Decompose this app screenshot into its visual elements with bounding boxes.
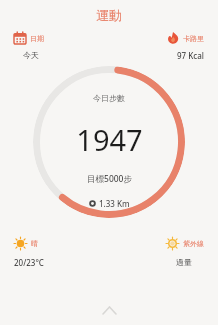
button[interactable]: 紫外線 [162,235,206,269]
staticText: 日期 [30,34,44,43]
button[interactable]: 晴 [12,235,46,270]
staticText: 97 Kcal [177,50,204,61]
staticText: 晴 [31,239,38,248]
staticText: 今日步數 [93,93,125,103]
staticText: 今天 [23,50,39,60]
staticText: 1947 [76,120,143,159]
button[interactable]: 卡路里 [165,30,206,63]
staticText: 紫外線 [183,239,204,248]
staticText: 目標5000步 [87,173,132,185]
staticText: 運動 [96,7,122,23]
staticText: 20/23°C [14,257,44,268]
button[interactable]: Expand [96,297,122,323]
staticText: 過量 [176,257,192,267]
button[interactable]: 今日步數 [33,66,185,218]
staticText: 卡路里 [183,34,204,43]
staticText: 1.33 Km [99,198,130,209]
button[interactable]: 日期 [12,30,50,62]
